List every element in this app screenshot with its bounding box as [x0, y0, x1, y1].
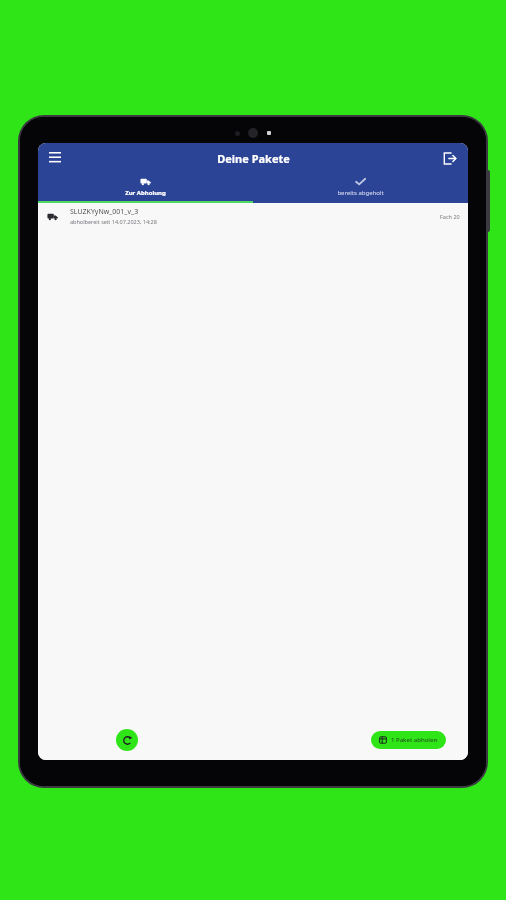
staticText: SLUZKYyNw_001_v_3 [70, 207, 139, 217]
button[interactable]: Zur Abholung [38, 173, 253, 201]
button[interactable]: Aktualisieren [116, 729, 138, 751]
staticText: Zur Abholung [125, 189, 166, 197]
staticText: 1 Paket abholen [391, 736, 438, 744]
button[interactable]: SLUZKYyNw_001_v_3 [38, 203, 468, 229]
button[interactable]: Menü [44, 147, 66, 169]
button[interactable]: Abmelden [438, 147, 460, 169]
staticText: abholbereit seit 14.07.2023, 14:28 [70, 218, 157, 225]
staticText: Deine Pakete [217, 151, 290, 166]
button[interactable]: bereits abgeholt [253, 173, 468, 201]
staticText: Fach 20 [440, 213, 460, 220]
button[interactable]: 1 Paket abholen [371, 731, 446, 749]
staticText: bereits abgeholt [337, 189, 384, 197]
